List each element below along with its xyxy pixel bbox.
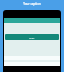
button[interactable]: Start bbox=[5, 34, 59, 40]
staticText: Your caption bbox=[0, 2, 64, 6]
staticText: Start bbox=[29, 36, 35, 39]
